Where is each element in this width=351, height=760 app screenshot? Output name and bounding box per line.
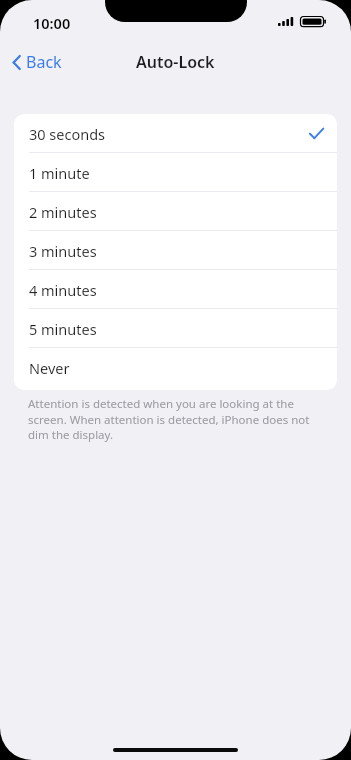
staticText: 1 minute [29, 163, 90, 183]
staticText: Back [26, 51, 62, 73]
button[interactable]: 4 minutes [14, 270, 337, 309]
button[interactable]: 3 minutes [14, 231, 337, 270]
staticText: 4 minutes [29, 280, 97, 300]
button[interactable]: Never [14, 348, 337, 387]
staticText: 10:00 [33, 13, 71, 33]
staticText: Auto-Lock [136, 51, 215, 73]
staticText: 5 minutes [29, 319, 97, 339]
staticText: 30 seconds [29, 124, 106, 144]
button[interactable]: 2 minutes [14, 192, 337, 231]
staticText: 3 minutes [29, 241, 97, 261]
button[interactable]: 30 seconds [14, 114, 337, 153]
staticText: Attention is detected when you are looki… [28, 396, 320, 442]
button[interactable]: 5 minutes [14, 309, 337, 348]
button[interactable]: Back [8, 49, 66, 75]
staticText: 2 minutes [29, 202, 97, 222]
button[interactable]: 1 minute [14, 153, 337, 192]
staticText: Never [29, 358, 70, 378]
